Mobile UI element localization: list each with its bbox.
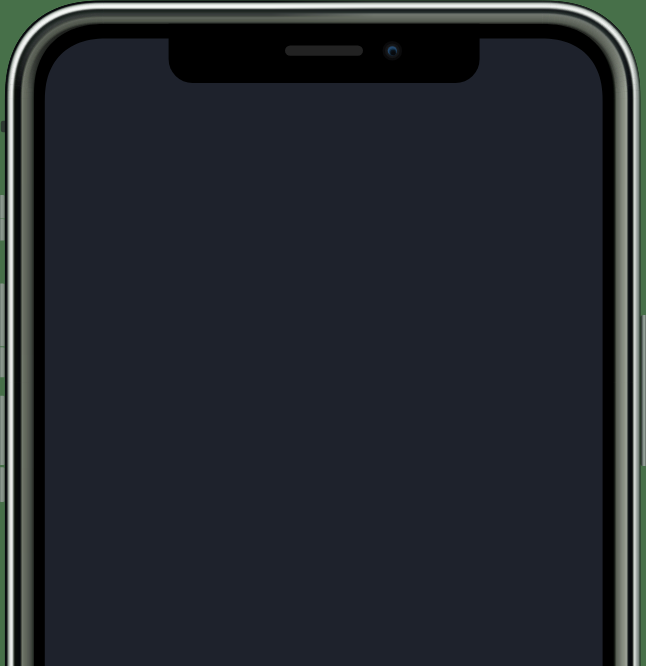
button[interactable]: Phone device mockup: [0, 0, 646, 666]
